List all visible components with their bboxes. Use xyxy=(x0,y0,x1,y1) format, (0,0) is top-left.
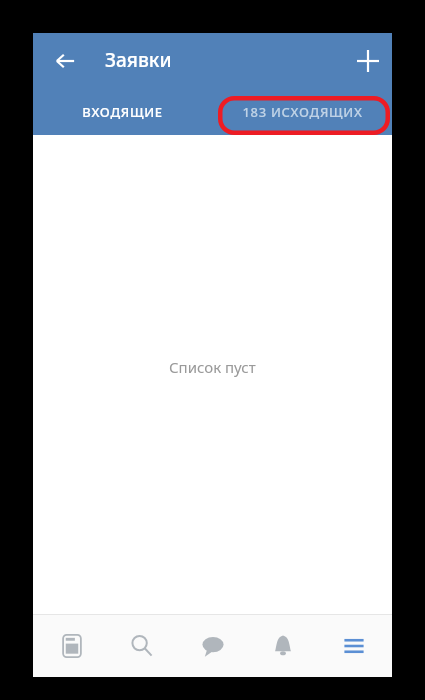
staticText: ВХОДЯЩИЕ xyxy=(82,103,163,121)
staticText: Список пуст xyxy=(169,357,256,377)
staticText: 183 ИСХОДЯЩИХ xyxy=(242,103,363,121)
button[interactable]: ВХОДЯЩИЕ xyxy=(33,88,212,135)
button[interactable]: Notifications xyxy=(251,615,315,677)
button[interactable]: Feed xyxy=(40,615,104,677)
button[interactable]: Add xyxy=(346,39,390,83)
button[interactable]: 183 ИСХОДЯЩИХ xyxy=(212,88,392,135)
button[interactable]: Back xyxy=(43,39,87,83)
button[interactable]: Messages xyxy=(181,615,245,677)
staticText: Заявки xyxy=(105,47,172,73)
button[interactable]: Menu xyxy=(322,615,386,677)
button[interactable]: Search xyxy=(110,615,174,677)
